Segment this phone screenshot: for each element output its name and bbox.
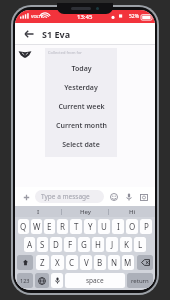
button[interactable]: Current week	[45, 97, 117, 116]
staticText: G	[81, 239, 87, 250]
button[interactable]: I	[15, 206, 61, 217]
button[interactable]: T	[70, 219, 82, 234]
staticText: N	[111, 257, 118, 268]
staticText: 123	[20, 277, 30, 284]
button[interactable]: Current month	[45, 116, 117, 135]
staticText: T	[74, 221, 79, 232]
staticText: Select date	[62, 140, 100, 150]
staticText: M	[124, 257, 132, 268]
button[interactable]: K	[120, 237, 132, 252]
button[interactable]: S	[37, 237, 48, 252]
button[interactable]: Voice message	[123, 191, 135, 203]
staticText: F	[68, 239, 73, 250]
staticText: H	[95, 239, 101, 250]
staticText: S	[40, 239, 45, 250]
button[interactable]: Dictation	[51, 273, 63, 288]
button[interactable]: I	[112, 219, 124, 234]
staticText: Hey	[80, 208, 91, 216]
button[interactable]: G	[78, 237, 90, 252]
staticText: return	[131, 277, 149, 285]
button[interactable]: W	[31, 219, 42, 234]
button[interactable]: Camera	[138, 191, 150, 203]
button[interactable]: Z	[36, 255, 49, 270]
button[interactable]: F	[64, 237, 76, 252]
button[interactable]: Backspace	[137, 255, 153, 270]
button[interactable]: Hi	[109, 206, 155, 217]
button[interactable]: return	[127, 273, 153, 288]
button[interactable]: Shift	[17, 255, 33, 270]
button[interactable]: J	[106, 237, 118, 252]
button[interactable]: B	[94, 255, 106, 270]
staticText: O	[129, 221, 136, 232]
button[interactable]: Y	[84, 219, 96, 234]
button[interactable]: O	[126, 219, 138, 234]
staticText: Z	[40, 257, 45, 268]
staticText: S1 Eva	[42, 28, 71, 40]
staticText: 13:45	[77, 13, 93, 21]
button[interactable]: E	[44, 219, 55, 234]
button[interactable]: Q	[18, 219, 29, 234]
staticText: U	[101, 221, 107, 232]
staticText: Today	[71, 64, 92, 74]
button[interactable]: R	[57, 219, 68, 234]
button[interactable]: H	[92, 237, 104, 252]
staticText: A	[27, 239, 33, 250]
staticText: K	[124, 239, 129, 250]
button[interactable]: U	[98, 219, 110, 234]
staticText: J	[111, 239, 114, 250]
button[interactable]: V	[80, 255, 92, 270]
staticText: B	[97, 257, 103, 268]
staticText: space	[86, 276, 104, 285]
button[interactable]: Back	[22, 27, 36, 41]
button[interactable]: space	[65, 273, 125, 288]
staticText: Collected from for	[48, 50, 82, 55]
button[interactable]: Hey	[62, 206, 108, 217]
staticText: Current week	[58, 102, 105, 112]
staticText: 52%	[129, 13, 139, 20]
staticText: C	[69, 257, 75, 268]
button[interactable]: X	[51, 255, 64, 270]
staticText: Hi	[129, 208, 136, 216]
staticText: X	[55, 257, 60, 268]
staticText: VOLTE	[31, 14, 44, 19]
staticText: V	[84, 257, 89, 268]
staticText: R	[60, 221, 65, 232]
button[interactable]: N	[108, 255, 120, 270]
staticText: L	[138, 239, 143, 250]
staticText: I	[37, 208, 40, 216]
button[interactable]: Yesterday	[45, 78, 117, 97]
staticText: E	[47, 221, 52, 232]
button[interactable]: Today	[45, 59, 117, 78]
staticText: Current month	[56, 121, 107, 131]
button[interactable]: D	[50, 237, 62, 252]
button[interactable]: Emoji	[108, 191, 120, 203]
staticText: Yesterday	[64, 83, 98, 93]
staticText: W	[33, 221, 41, 232]
staticText: I	[117, 221, 120, 232]
button[interactable]: A	[24, 237, 35, 252]
button[interactable]: P	[140, 219, 152, 234]
button[interactable]: Attach	[20, 191, 32, 203]
button[interactable]: Type a message	[35, 190, 104, 203]
staticText: Q	[20, 221, 27, 232]
staticText: Y	[88, 221, 93, 232]
button[interactable]: 123	[17, 273, 33, 288]
staticText: D	[53, 239, 59, 250]
button[interactable]: L	[134, 237, 146, 252]
button[interactable]: M	[122, 255, 134, 270]
button[interactable]: Select date	[45, 135, 117, 154]
staticText: P	[144, 221, 149, 232]
button[interactable]: C	[66, 255, 78, 270]
button[interactable]: Change language	[35, 273, 49, 288]
staticText: Type a message	[41, 192, 90, 201]
